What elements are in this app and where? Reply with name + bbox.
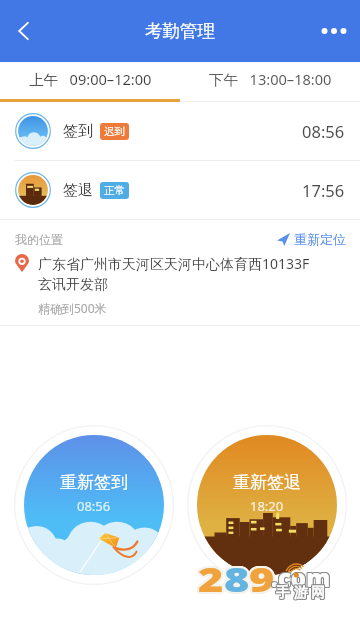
staticText: 9 [247, 558, 273, 603]
staticText: 2 [198, 557, 224, 602]
staticText: 手 游 网 [275, 583, 325, 602]
staticText: 18:20 [250, 497, 284, 515]
staticText: 8 [223, 559, 249, 604]
staticText: 2 [199, 555, 225, 600]
staticText: 2 [199, 556, 225, 601]
staticText: 2 [200, 558, 226, 603]
staticText: 2 [199, 558, 225, 603]
staticText: .com [272, 560, 332, 593]
staticText: 手 游 网 [277, 583, 327, 602]
staticText: 9 [249, 557, 275, 602]
staticText: 8 [223, 558, 249, 603]
button[interactable]: Back [2, 9, 46, 53]
staticText: 9 [251, 557, 277, 602]
staticText: 9 [248, 557, 274, 602]
staticText: 9 [250, 557, 276, 602]
staticText: .com [272, 561, 332, 594]
staticText: 上午 09:00–12:00 [29, 69, 152, 89]
staticText: 2 [199, 557, 225, 602]
staticText: 8 [224, 556, 250, 601]
staticText: 9 [248, 559, 274, 604]
staticText: 8 [224, 557, 250, 602]
staticText: 8 [225, 557, 251, 602]
staticText: 9 [248, 558, 274, 603]
staticText: 8 [224, 558, 250, 603]
staticText: 2 [198, 556, 224, 601]
button[interactable]: 重新签退 [187, 425, 347, 585]
button[interactable]: 签到 [0, 102, 360, 160]
staticText: 考勤管理 [145, 20, 215, 42]
staticText: .com [272, 562, 332, 595]
staticText: 手 游 网 [276, 582, 326, 601]
staticText: 手 游 网 [275, 581, 325, 600]
button[interactable]: 重新签到 [14, 425, 174, 585]
staticText: 2 [198, 555, 224, 600]
staticText: 8 [224, 559, 250, 604]
staticText: 8 [223, 557, 249, 602]
button[interactable]: 重新定位 [277, 231, 346, 247]
staticText: 重新签退 [233, 472, 301, 493]
staticText: 8 [226, 558, 252, 603]
staticText: 2 [199, 559, 225, 604]
staticText: 重新签到 [60, 472, 128, 493]
staticText: 手 游 网 [277, 581, 327, 600]
staticText: 8 [224, 557, 250, 602]
staticText: 8 [226, 557, 252, 602]
staticText: 9 [250, 558, 276, 603]
staticText: 8 [223, 555, 249, 600]
staticText: 17:56 [302, 179, 345, 201]
staticText: 2 [197, 557, 223, 602]
staticText: 手 游 网 [277, 582, 327, 601]
staticText: 9 [247, 556, 273, 601]
staticText: 9 [248, 556, 274, 601]
staticText: 08:56 [77, 497, 111, 515]
button[interactable]: 下午 13:00–18:00 [180, 62, 360, 102]
staticText: 2 [197, 558, 223, 603]
staticText: 8 [222, 558, 248, 603]
staticText: 2 [200, 556, 226, 601]
staticText: 签到 [63, 122, 93, 141]
staticText: 手 游 网 [276, 583, 326, 602]
staticText: 2 [197, 556, 223, 601]
staticText: 8 [224, 555, 250, 600]
staticText: 手 游 网 [275, 582, 325, 601]
staticText: 9 [250, 555, 276, 600]
staticText: 重新定位 [294, 231, 346, 247]
staticText: 9 [248, 555, 274, 600]
staticText: 签退 [63, 181, 93, 200]
staticText: 2 [196, 557, 222, 602]
staticText: 2 [198, 559, 224, 604]
staticText: 2 [198, 557, 224, 602]
staticText: 我的位置 [15, 232, 63, 247]
staticText: 9 [250, 559, 276, 604]
staticText: 2 [196, 558, 222, 603]
button[interactable]: 上午 09:00–12:00 [0, 62, 180, 102]
staticText: 8 [222, 557, 248, 602]
staticText: 9 [251, 558, 277, 603]
staticText: 9 [249, 556, 275, 601]
staticText: 精确到500米 [38, 300, 107, 316]
staticText: 9 [249, 558, 275, 603]
button[interactable]: 签退 [0, 161, 360, 219]
staticText: .com [270, 560, 330, 593]
staticText: 2 [197, 559, 223, 604]
staticText: 9 [247, 557, 273, 602]
staticText: 8 [225, 559, 251, 604]
staticText: 8 [225, 555, 251, 600]
staticText: 8 [223, 556, 249, 601]
staticText: 2 [200, 557, 226, 602]
staticText: .com [271, 560, 331, 593]
staticText: 2 [198, 558, 224, 603]
staticText: .com [270, 561, 330, 594]
staticText: 广东省广州市天河区天河中心体育西10133F 玄讯开发部 [38, 254, 310, 293]
staticText: 2 [196, 556, 222, 601]
staticText: 8 [225, 556, 251, 601]
staticText: 9 [249, 559, 275, 604]
button[interactable]: More options [312, 9, 356, 53]
staticText: .com [271, 561, 331, 594]
staticText: 9 [249, 557, 275, 602]
staticText: 8 [226, 556, 252, 601]
staticText: .com [271, 562, 331, 595]
staticText: 8 [222, 556, 248, 601]
staticText: 08:56 [302, 120, 345, 142]
